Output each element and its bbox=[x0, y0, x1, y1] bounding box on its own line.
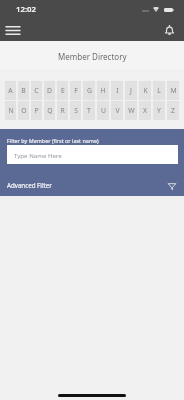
staticText: P bbox=[34, 106, 39, 115]
button[interactable]: R bbox=[57, 101, 68, 120]
button[interactable]: K bbox=[139, 81, 151, 100]
button[interactable]: Notifications bbox=[158, 19, 180, 41]
staticText: L bbox=[157, 86, 161, 95]
staticText: Q bbox=[47, 106, 53, 115]
staticText: T bbox=[87, 106, 91, 115]
button[interactable]: W bbox=[125, 101, 137, 120]
staticText: G bbox=[87, 86, 92, 95]
staticText: V bbox=[115, 106, 120, 115]
staticText: U bbox=[101, 106, 106, 115]
button[interactable]: Advanced Filter bbox=[0, 177, 184, 196]
button[interactable]: J bbox=[125, 81, 137, 100]
button[interactable]: Open navigation menu bbox=[2, 19, 24, 41]
staticText: Type Name Here bbox=[14, 151, 62, 159]
staticText: E bbox=[61, 86, 65, 95]
button[interactable]: Z bbox=[167, 101, 179, 120]
button[interactable]: Q bbox=[44, 101, 55, 120]
button[interactable]: S bbox=[70, 101, 81, 120]
button[interactable]: B bbox=[18, 81, 29, 100]
button[interactable]: E bbox=[57, 81, 68, 100]
staticText: 12:02 bbox=[16, 4, 36, 15]
staticText: Filter by Member (first or last name) bbox=[7, 137, 99, 144]
button[interactable]: H bbox=[97, 81, 109, 100]
staticText: R bbox=[60, 106, 65, 115]
button[interactable]: P bbox=[31, 101, 42, 120]
button[interactable]: X bbox=[139, 101, 151, 120]
staticText: A bbox=[8, 86, 13, 95]
staticText: M bbox=[170, 86, 177, 95]
button[interactable]: D bbox=[44, 81, 55, 100]
button[interactable]: F bbox=[70, 81, 81, 100]
staticText: Advanced Filter bbox=[7, 181, 52, 189]
button[interactable]: Type Name Here bbox=[7, 145, 178, 164]
button[interactable]: C bbox=[31, 81, 42, 100]
button[interactable]: G bbox=[83, 81, 95, 100]
button[interactable]: Y bbox=[153, 101, 165, 120]
button[interactable]: L bbox=[153, 81, 165, 100]
staticText: W bbox=[128, 106, 135, 115]
staticText: C bbox=[34, 86, 39, 95]
button[interactable]: M bbox=[167, 81, 179, 100]
staticText: X bbox=[143, 106, 147, 115]
staticText: S bbox=[74, 106, 78, 115]
staticText: D bbox=[47, 86, 52, 95]
button[interactable]: A bbox=[5, 81, 16, 100]
staticText: O bbox=[21, 106, 27, 115]
button[interactable]: O bbox=[18, 101, 29, 120]
staticText: F bbox=[74, 86, 78, 95]
button[interactable]: V bbox=[111, 101, 123, 120]
staticText: H bbox=[100, 86, 106, 95]
button[interactable]: U bbox=[97, 101, 109, 120]
staticText: Y bbox=[157, 106, 161, 115]
staticText: Member Directory bbox=[58, 51, 127, 62]
button[interactable]: I bbox=[111, 81, 123, 100]
staticText: Z bbox=[171, 106, 175, 115]
staticText: I bbox=[116, 86, 119, 95]
staticText: K bbox=[143, 86, 148, 95]
button[interactable]: T bbox=[83, 101, 95, 120]
button[interactable]: N bbox=[5, 101, 16, 120]
staticText: N bbox=[8, 106, 14, 115]
staticText: B bbox=[21, 86, 26, 95]
staticText: J bbox=[130, 86, 132, 95]
